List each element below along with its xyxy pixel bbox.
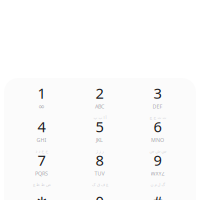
staticText: 8 xyxy=(95,150,103,170)
staticText: ت ث ج چ xyxy=(149,115,166,120)
staticText: ر ز ژ xyxy=(95,149,103,153)
staticText: WXYZ xyxy=(150,170,164,177)
staticText: 0 xyxy=(95,191,103,200)
staticText: 3 xyxy=(153,83,161,103)
staticText: GHI xyxy=(36,136,46,144)
button[interactable]: Star xyxy=(12,193,70,200)
staticText: 2 xyxy=(95,83,103,103)
button[interactable]: Two xyxy=(70,87,128,121)
button[interactable]: Pound xyxy=(128,193,186,200)
staticText: آ ا ب پ xyxy=(93,115,106,120)
button[interactable]: Nine xyxy=(128,154,186,188)
staticText: 9 xyxy=(153,150,161,170)
staticText: MNO xyxy=(151,136,164,144)
staticText: DEF xyxy=(152,103,162,110)
button[interactable]: One xyxy=(12,87,70,121)
staticText: 4 xyxy=(37,117,45,136)
staticText: گ ل م ن xyxy=(150,182,165,187)
staticText: JKL xyxy=(96,136,103,144)
staticText: س ش ص xyxy=(149,149,166,153)
button[interactable]: Six xyxy=(128,120,186,154)
button[interactable]: Zero xyxy=(70,193,128,200)
staticText: 1 xyxy=(37,83,45,103)
staticText: TUV xyxy=(94,170,104,177)
staticText: ض ط ظ ع xyxy=(32,182,50,187)
staticText: 5 xyxy=(95,117,103,136)
button[interactable]: Seven xyxy=(12,154,70,188)
staticText: # xyxy=(153,191,162,200)
button[interactable]: Three xyxy=(128,87,186,121)
button[interactable]: Five xyxy=(70,120,128,154)
staticText: ABC xyxy=(95,103,104,110)
button[interactable]: Four xyxy=(12,120,70,154)
staticText: ∞ xyxy=(38,102,45,111)
staticText: 6 xyxy=(153,117,161,136)
staticText: 7 xyxy=(37,150,45,170)
staticText: ∗ xyxy=(35,193,47,200)
staticText: غ ف ق ک xyxy=(91,182,107,187)
button[interactable]: Eight xyxy=(70,154,128,188)
staticText: ح خ د ذ xyxy=(35,149,48,153)
staticText: PQRS xyxy=(35,170,48,177)
